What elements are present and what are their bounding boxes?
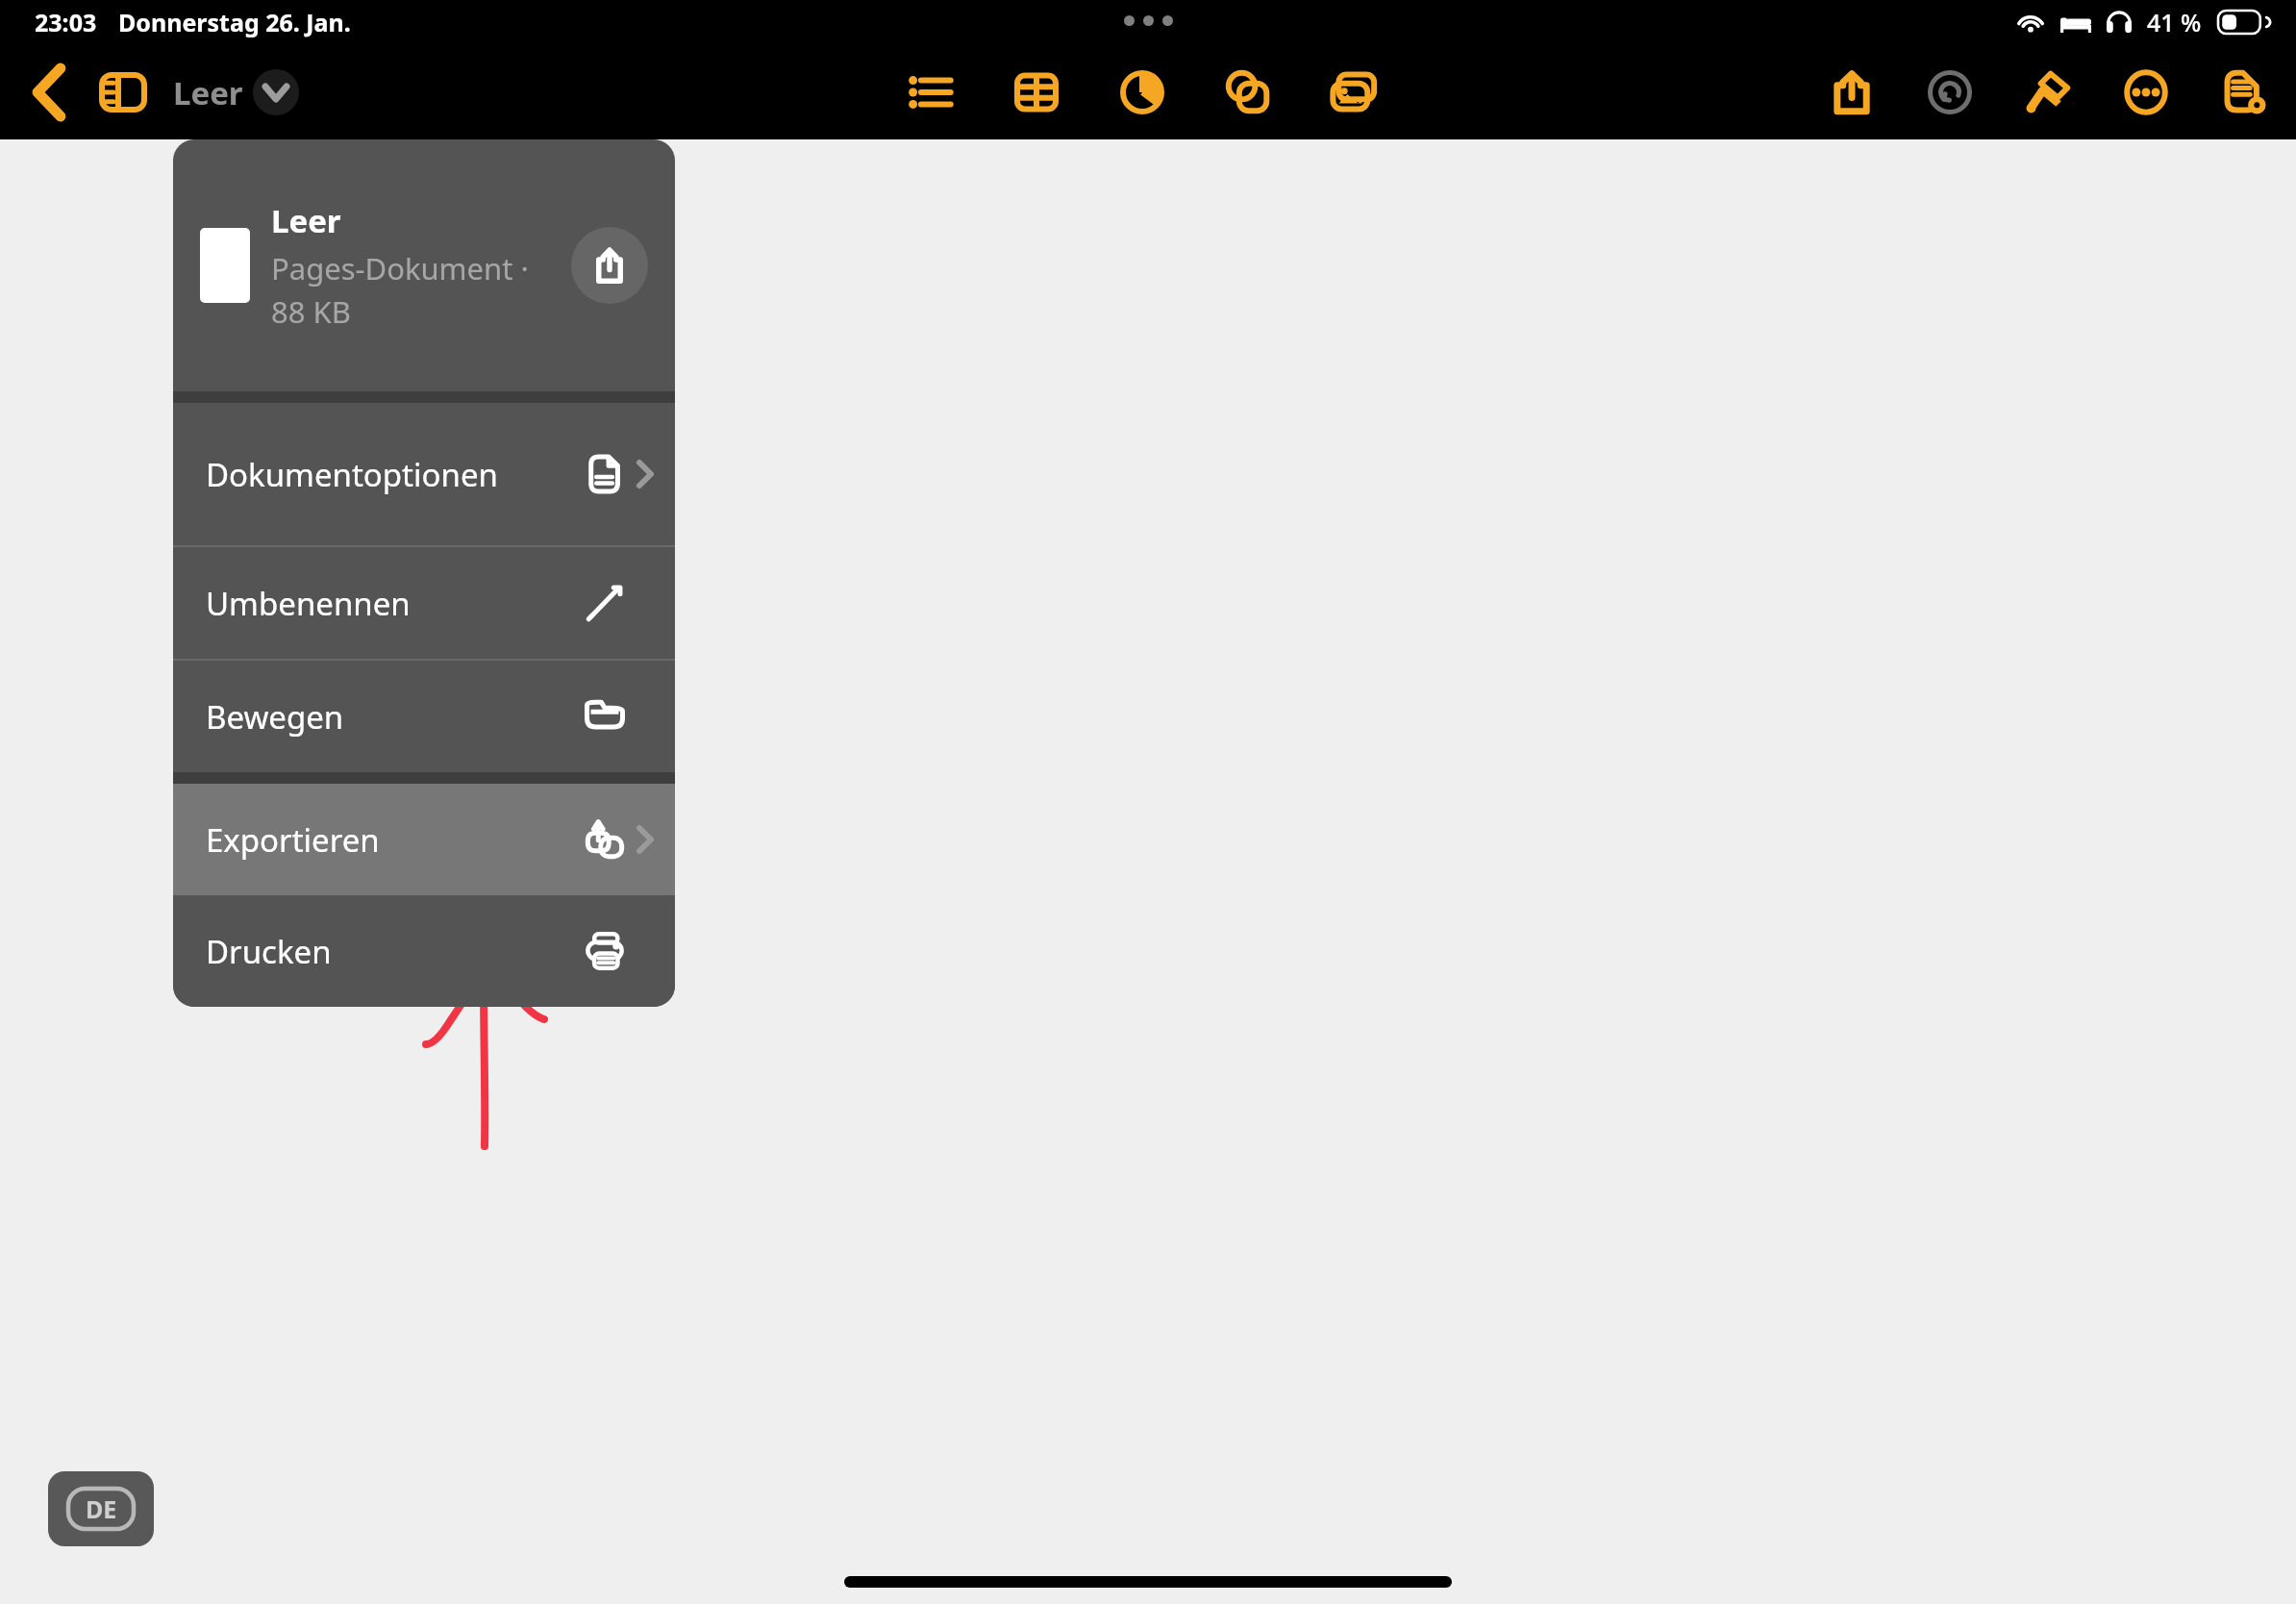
- staticText: Leer: [271, 199, 341, 242]
- button[interactable]: Teilen: [571, 227, 648, 304]
- button[interactable]: Tastatursprache Deutsch: [48, 1471, 154, 1546]
- staticText: Donnerstag 26. Jan.: [118, 6, 351, 38]
- button[interactable]: Liste: [896, 58, 965, 127]
- button[interactable]: Medien: [1319, 58, 1388, 127]
- button[interactable]: Formatieren: [2013, 58, 2083, 127]
- button[interactable]: Dokumentoptionen: [173, 403, 675, 545]
- button[interactable]: Widerrufen: [1915, 58, 1984, 127]
- button[interactable]: Teilen: [1817, 58, 1886, 127]
- button[interactable]: Form: [1213, 58, 1283, 127]
- button[interactable]: Drucken: [173, 895, 675, 1007]
- button[interactable]: Zurück: [13, 56, 87, 129]
- button[interactable]: Dokumentmenü: [253, 69, 299, 115]
- staticText: Pages-Dokument · 88 KB: [271, 248, 562, 332]
- button[interactable]: Umbenennen: [173, 547, 675, 659]
- button[interactable]: Seitenleiste: [87, 56, 160, 129]
- staticText: Leer: [173, 71, 243, 114]
- staticText: Umbenennen: [206, 582, 571, 625]
- button[interactable]: Dokument: [2209, 58, 2279, 127]
- staticText: DE: [86, 1492, 117, 1525]
- button[interactable]: Weitere Optionen: [2111, 58, 2181, 127]
- button[interactable]: Diagramm: [1108, 58, 1177, 127]
- staticText: Bewegen: [206, 695, 571, 739]
- staticText: Drucken: [206, 930, 571, 973]
- button[interactable]: Tabelle: [1002, 58, 1071, 127]
- button[interactable]: Exportieren: [173, 784, 675, 895]
- staticText: 41 %: [2147, 6, 2202, 38]
- staticText: 23:03: [35, 6, 97, 38]
- button[interactable]: Bewegen: [173, 661, 675, 772]
- staticText: Dokumentoptionen: [206, 453, 571, 496]
- staticText: Exportieren: [206, 818, 571, 862]
